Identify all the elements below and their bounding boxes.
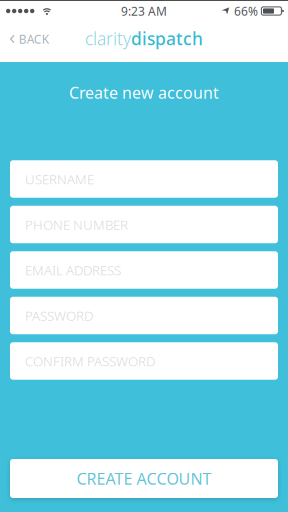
staticText: 9:23 AM xyxy=(121,3,167,19)
staticText: 66% xyxy=(234,3,258,19)
staticText: USERNAME xyxy=(25,170,94,188)
staticText: clarity xyxy=(85,27,131,50)
staticText: PASSWORD xyxy=(25,307,93,324)
button[interactable]: USERNAME xyxy=(10,160,278,198)
staticText: EMAIL ADDRESS xyxy=(25,261,121,279)
staticText: PHONE NUMBER xyxy=(25,216,128,233)
button[interactable]: CONFIRM PASSWORD xyxy=(10,342,278,380)
button[interactable]: CREATE ACCOUNT xyxy=(10,459,278,498)
staticText: dispatch xyxy=(131,27,203,50)
staticText: BACK xyxy=(19,31,49,47)
button[interactable]: PHONE NUMBER xyxy=(10,206,278,243)
button[interactable]: EMAIL ADDRESS xyxy=(10,251,278,289)
staticText: Create new account xyxy=(69,82,219,103)
staticText: CONFIRM PASSWORD xyxy=(25,352,155,370)
button[interactable]: PASSWORD xyxy=(10,297,278,334)
staticText: CREATE ACCOUNT xyxy=(76,468,211,489)
button[interactable]: BACK xyxy=(0,21,61,62)
